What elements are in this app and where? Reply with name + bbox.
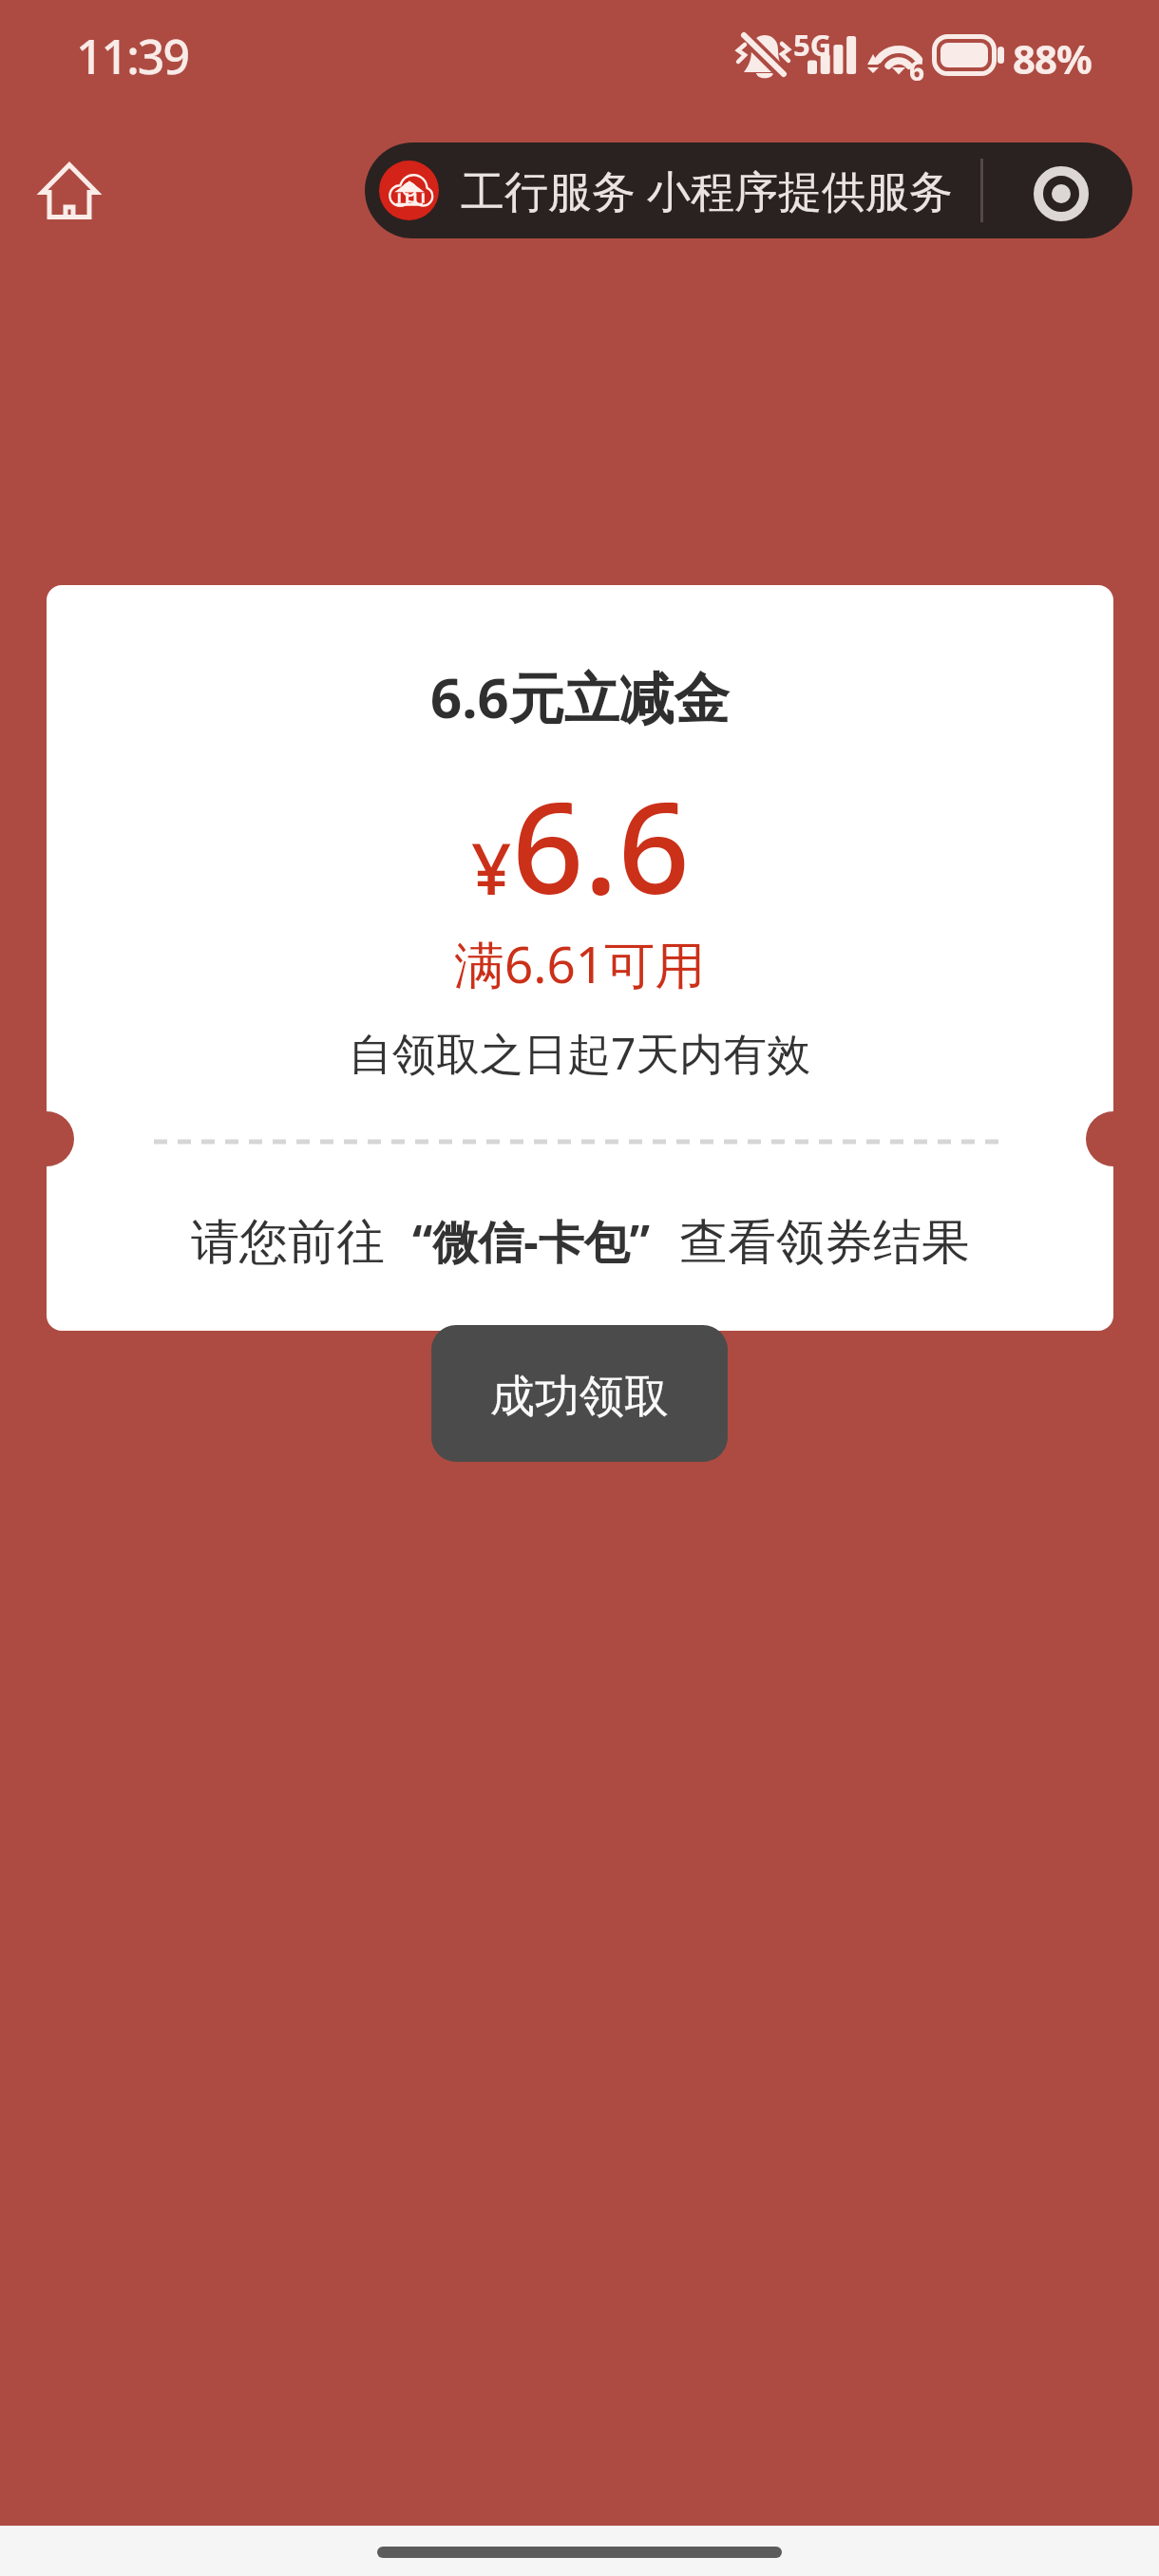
staticText: 11:39 bbox=[76, 24, 188, 88]
button[interactable]: Home bbox=[26, 148, 117, 236]
staticText: 6 bbox=[909, 52, 925, 88]
staticText: 88% bbox=[1013, 31, 1092, 85]
staticText: 6.6元立减金 bbox=[430, 659, 730, 734]
staticText: 5G bbox=[793, 25, 832, 65]
button[interactable]: 成功领取 bbox=[431, 1325, 728, 1462]
button[interactable]: More options bbox=[1034, 166, 1089, 221]
staticText: “微信-卡包” bbox=[412, 1210, 651, 1273]
button[interactable]: 工行服务 小程序提供服务 bbox=[365, 142, 1132, 238]
staticText: 成功领取 bbox=[490, 1369, 669, 1425]
staticText: 查看领券结果 bbox=[679, 1212, 970, 1273]
staticText: 6.6 bbox=[512, 760, 690, 931]
staticText: 请您前往 bbox=[191, 1212, 385, 1273]
staticText: 自领取之日起7天内有效 bbox=[349, 1023, 811, 1083]
staticText: ¥ bbox=[471, 820, 512, 916]
staticText: 工行服务 小程序提供服务 bbox=[461, 161, 953, 220]
staticText: 满6.61可用 bbox=[454, 929, 706, 997]
